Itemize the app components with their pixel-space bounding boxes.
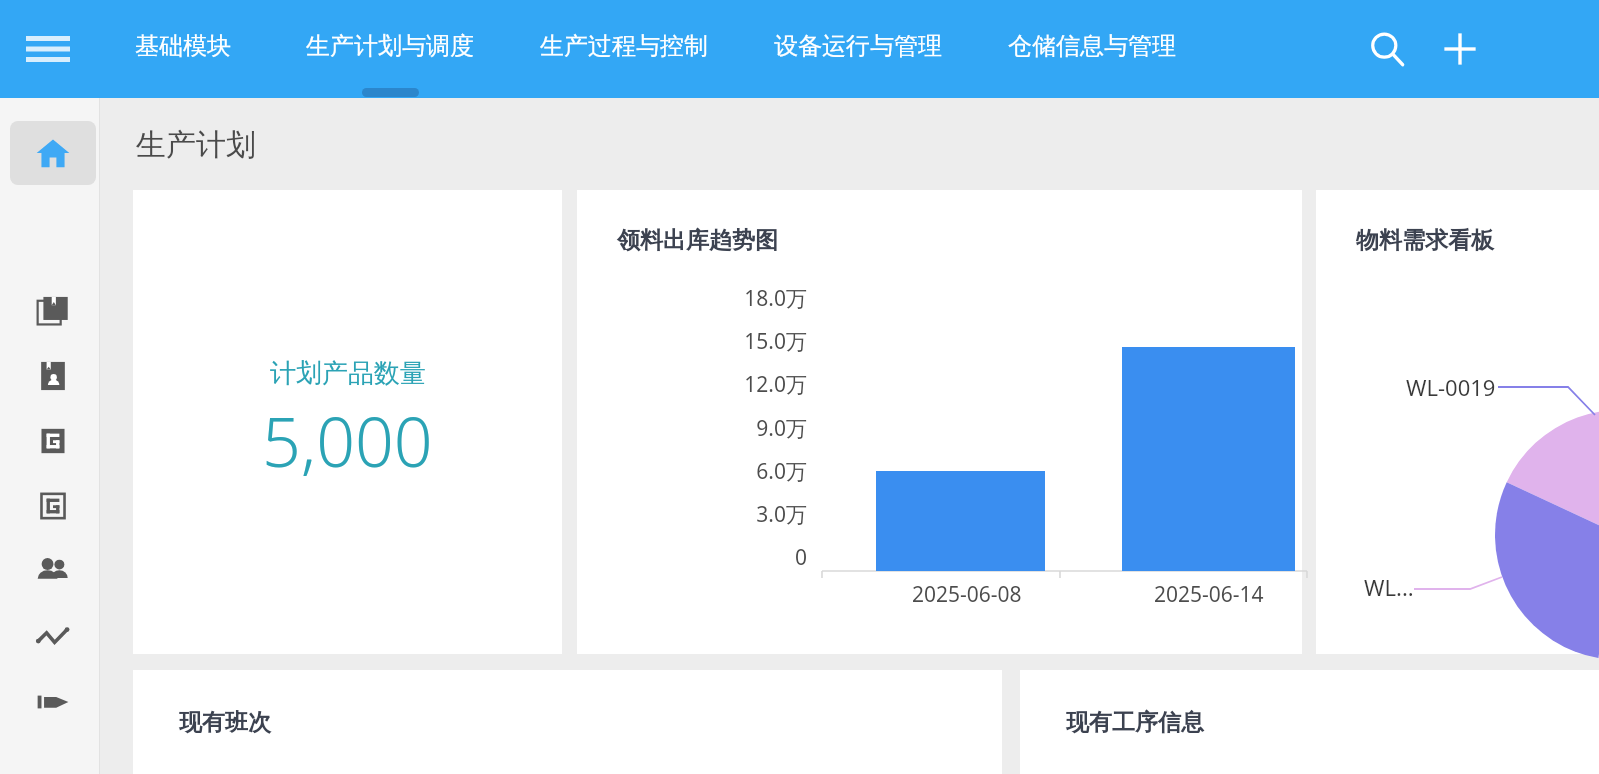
staticText: 生产过程与控制 bbox=[540, 31, 708, 61]
staticText: 0 bbox=[794, 543, 807, 572]
button[interactable]: Module G outline bbox=[10, 478, 96, 534]
button[interactable]: 设备运行与管理 bbox=[773, 10, 943, 88]
button[interactable]: Users bbox=[10, 543, 96, 599]
staticText: 2025-06-08 bbox=[912, 580, 1022, 609]
staticText: 9.0万 bbox=[756, 414, 807, 443]
button[interactable]: 仓储信息与管理 bbox=[1007, 10, 1177, 88]
staticText: 3.0万 bbox=[756, 500, 807, 529]
staticText: 现有工序信息 bbox=[1066, 708, 1204, 737]
staticText: 15.0万 bbox=[744, 327, 807, 356]
staticText: 12.0万 bbox=[744, 370, 807, 399]
staticText: 物料需求看板 bbox=[1356, 226, 1494, 255]
button[interactable]: 物料需求看板 bbox=[1316, 190, 1599, 654]
staticText: 现有班次 bbox=[179, 708, 271, 737]
staticText: 领料出库趋势图 bbox=[617, 226, 778, 255]
staticText: 基础模块 bbox=[135, 31, 231, 61]
button[interactable]: Trend bbox=[10, 608, 96, 664]
staticText: 计划产品数量 bbox=[270, 357, 426, 390]
staticText: 5,000 bbox=[262, 394, 433, 487]
button[interactable]: Module G bbox=[10, 413, 96, 469]
staticText: 设备运行与管理 bbox=[774, 31, 942, 61]
button[interactable]: 现有班次 bbox=[133, 670, 1002, 774]
staticText: WL-0019 bbox=[1406, 372, 1496, 402]
staticText: 6.0万 bbox=[756, 457, 807, 486]
staticText: 生产计划 bbox=[136, 126, 256, 164]
button[interactable]: Add bbox=[1431, 20, 1489, 78]
button[interactable]: 计划产品数量 bbox=[133, 190, 562, 654]
staticText: 2025-06-14 bbox=[1154, 580, 1264, 609]
button[interactable]: Home bbox=[10, 121, 96, 185]
button[interactable]: Book bbox=[10, 283, 96, 339]
button[interactable]: Search bbox=[1358, 20, 1416, 78]
button[interactable]: 基础模块 bbox=[133, 10, 233, 88]
button[interactable]: 领料出库趋势图 bbox=[577, 190, 1302, 654]
staticText: WL... bbox=[1364, 572, 1414, 602]
button[interactable]: 生产计划与调度 bbox=[305, 10, 475, 88]
button[interactable]: Contacts bbox=[10, 348, 96, 404]
button[interactable]: 生产过程与控制 bbox=[539, 10, 709, 88]
staticText: 18.0万 bbox=[744, 284, 807, 313]
button[interactable]: Menu bbox=[20, 21, 76, 77]
staticText: 生产计划与调度 bbox=[306, 31, 474, 61]
staticText: 仓储信息与管理 bbox=[1008, 31, 1176, 61]
button[interactable]: Handover bbox=[10, 674, 96, 730]
button[interactable]: 现有工序信息 bbox=[1020, 670, 1599, 774]
